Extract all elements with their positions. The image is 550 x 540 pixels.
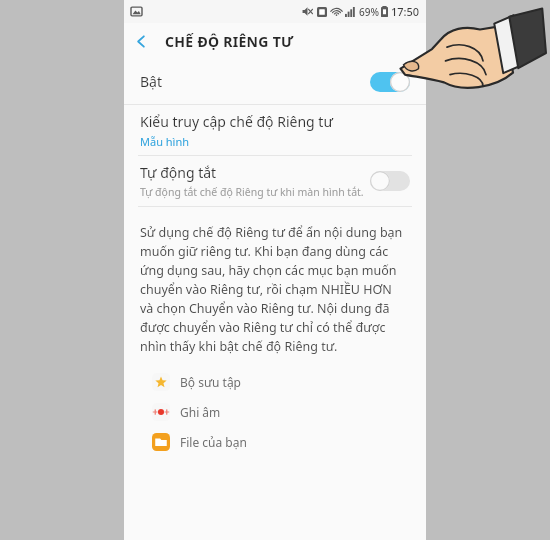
button[interactable]: Kiểu truy cập chế độ Riêng tư	[124, 105, 426, 155]
button[interactable]: Ghi âm	[152, 401, 426, 423]
staticText: CHẾ ĐỘ RIÊNG TƯ	[165, 32, 294, 51]
button[interactable]: Bộ sưu tập	[152, 371, 426, 393]
staticText: File của bạn	[180, 434, 247, 450]
button[interactable]: File của bạn	[152, 431, 426, 453]
staticText: Bật	[140, 72, 163, 91]
staticText: Kiểu truy cập chế độ Riêng tư	[140, 112, 333, 131]
staticText: Tự động tắt chế độ Riêng tư khi màn hình…	[140, 185, 364, 199]
staticText: Tự động tắt	[140, 163, 217, 182]
button[interactable]: Back	[124, 24, 158, 58]
staticText: Ghi âm	[180, 404, 221, 420]
staticText: 17:50	[391, 4, 420, 19]
staticText: Bộ sưu tập	[180, 374, 241, 390]
staticText: Sử dụng chế độ Riêng tư để ẩn nội dung b…	[140, 224, 406, 355]
button[interactable]: Tự động tắt	[124, 156, 426, 206]
staticText: 69%	[359, 5, 379, 19]
staticText: Mẫu hình	[140, 134, 190, 149]
button[interactable]: Bật	[124, 59, 426, 104]
